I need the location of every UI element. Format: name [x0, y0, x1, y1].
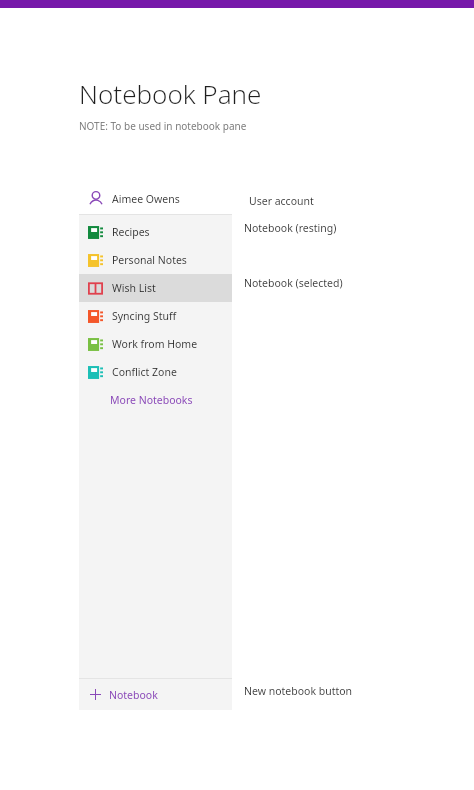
- button[interactable]: More Notebooks: [79, 386, 232, 414]
- button[interactable]: Conflict Zone: [79, 358, 232, 386]
- staticText: Recipes: [112, 225, 150, 239]
- button[interactable]: Notebook: [79, 679, 232, 710]
- staticText: Syncing Stuff: [112, 309, 177, 323]
- button[interactable]: Personal Notes: [79, 246, 232, 274]
- staticText: Aimee Owens: [112, 192, 180, 206]
- button[interactable]: Wish List: [79, 274, 232, 302]
- button[interactable]: Aimee Owens: [79, 183, 232, 214]
- staticText: Notebook: [109, 688, 158, 702]
- staticText: Notebook Pane: [79, 76, 262, 111]
- button[interactable]: Work from Home: [79, 330, 232, 358]
- staticText: Wish List: [112, 281, 156, 295]
- button[interactable]: Syncing Stuff: [79, 302, 232, 330]
- staticText: Conflict Zone: [112, 365, 177, 379]
- staticText: Notebook (resting): [244, 221, 337, 235]
- staticText: Personal Notes: [112, 253, 187, 267]
- staticText: New notebook button: [244, 684, 353, 698]
- staticText: NOTE: To be used in notebook pane: [79, 119, 247, 133]
- staticText: Notebook (selected): [244, 276, 343, 290]
- staticText: More Notebooks: [110, 393, 193, 407]
- button[interactable]: Recipes: [79, 218, 232, 246]
- staticText: User account: [249, 194, 314, 208]
- staticText: Work from Home: [112, 337, 198, 351]
